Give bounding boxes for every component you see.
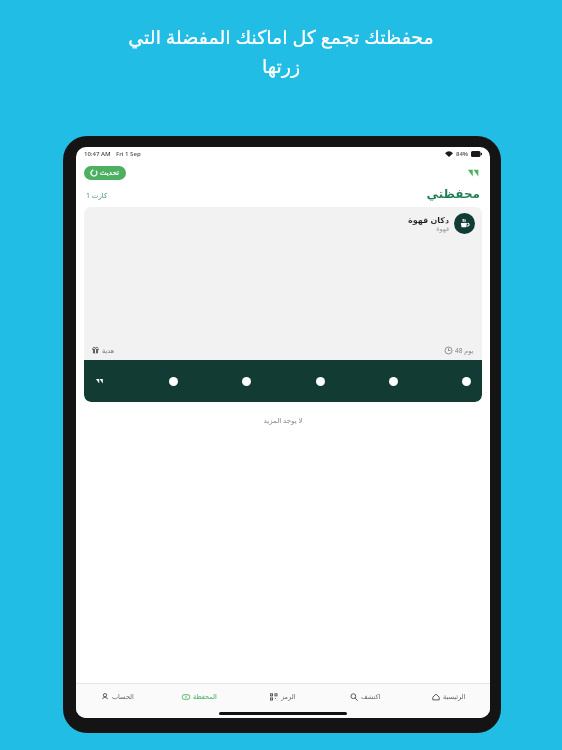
button[interactable]: الرمز	[241, 684, 324, 709]
staticText: المحفظة	[193, 693, 217, 701]
staticText: 1 كارت	[86, 191, 108, 201]
staticText: محفظتي	[426, 187, 480, 201]
staticText: قهوة	[436, 225, 449, 233]
staticText: تحديث	[100, 169, 119, 177]
staticText: الرمز	[281, 693, 296, 701]
button[interactable]: الحساب	[76, 684, 158, 709]
staticText: هدية	[102, 347, 115, 355]
other: Gift	[92, 347, 99, 354]
other: Stamp logo	[95, 376, 105, 386]
staticText: زرتها	[44, 55, 518, 77]
staticText: دكان قهوة	[408, 214, 449, 225]
staticText: اكتشف	[361, 693, 381, 701]
staticText: الحساب	[112, 693, 134, 701]
staticText: 10:47 AM	[84, 150, 111, 158]
button[interactable]: الرئيسية	[407, 684, 490, 709]
staticText: 48 يوم	[455, 346, 474, 355]
staticText: لا يوجد المزيد	[76, 416, 490, 426]
other: App logo	[466, 165, 482, 181]
button[interactable]: المحفظة	[158, 684, 241, 709]
button[interactable]: اكتشف	[324, 684, 407, 709]
staticText: محفظتك تجمع كل اماكنك المفضلة التي	[44, 24, 518, 50]
staticText: الرئيسية	[443, 693, 466, 701]
staticText: Fri 1 Sep	[116, 150, 141, 158]
staticText: 84%	[456, 150, 469, 158]
button[interactable]: دكان قهوة	[84, 207, 482, 402]
button[interactable]: تحديث	[84, 166, 126, 180]
